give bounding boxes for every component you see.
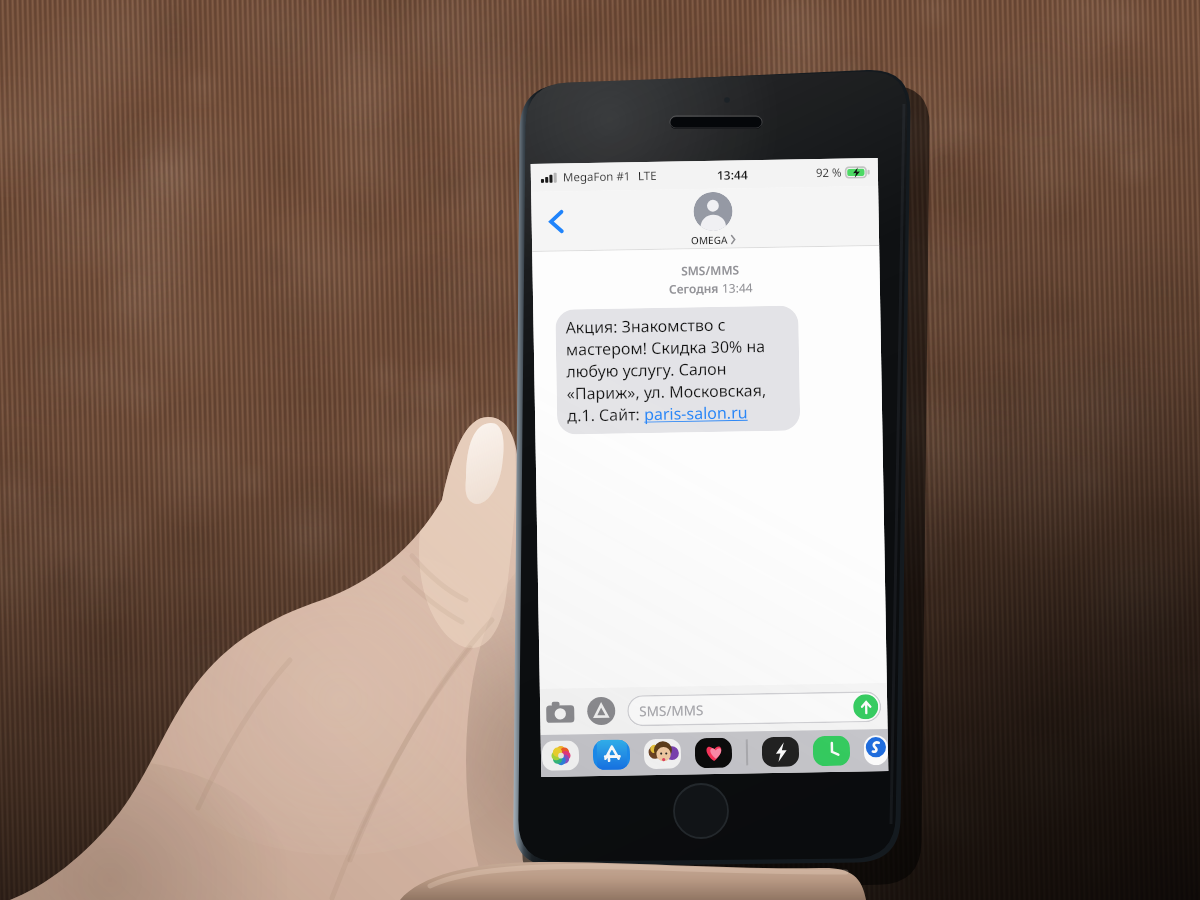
staticText: Сегодня bbox=[669, 280, 722, 297]
button[interactable]: Fitness bbox=[695, 738, 732, 768]
staticText: Акция: Знакомство с мастером! Скидка 30%… bbox=[565, 313, 767, 404]
button[interactable]: Clock bbox=[813, 736, 850, 766]
button[interactable]: Photos bbox=[542, 740, 579, 771]
staticText: 13:44 bbox=[717, 166, 748, 183]
button[interactable]: App Store bbox=[585, 695, 618, 727]
button[interactable]: OMEGA bbox=[690, 191, 735, 247]
staticText: SMS/MMS bbox=[536, 259, 884, 281]
button[interactable]: Акция: Знакомство с мастером! Скидка 30%… bbox=[555, 305, 800, 435]
button[interactable]: App Store bbox=[593, 739, 630, 770]
button[interactable]: SMS/MMS bbox=[627, 691, 881, 726]
staticText: LTE bbox=[638, 168, 657, 184]
button[interactable]: Camera bbox=[544, 695, 577, 728]
button[interactable]: Memoji bbox=[644, 738, 681, 769]
button[interactable]: Shazam bbox=[864, 735, 888, 765]
staticText: 13:44 bbox=[722, 279, 753, 296]
staticText: paris-salon.ru bbox=[644, 401, 748, 425]
button[interactable]: Shortcuts bbox=[762, 736, 799, 767]
staticText: MegaFon #1 bbox=[563, 168, 631, 185]
staticText: 92 % bbox=[816, 165, 842, 181]
staticText: SMS/MMS bbox=[639, 701, 703, 720]
button[interactable]: Back bbox=[537, 203, 574, 240]
staticText: д.1. Сайт: bbox=[567, 403, 644, 426]
staticText: OMEGA bbox=[691, 233, 728, 247]
button[interactable]: Send bbox=[853, 694, 878, 719]
